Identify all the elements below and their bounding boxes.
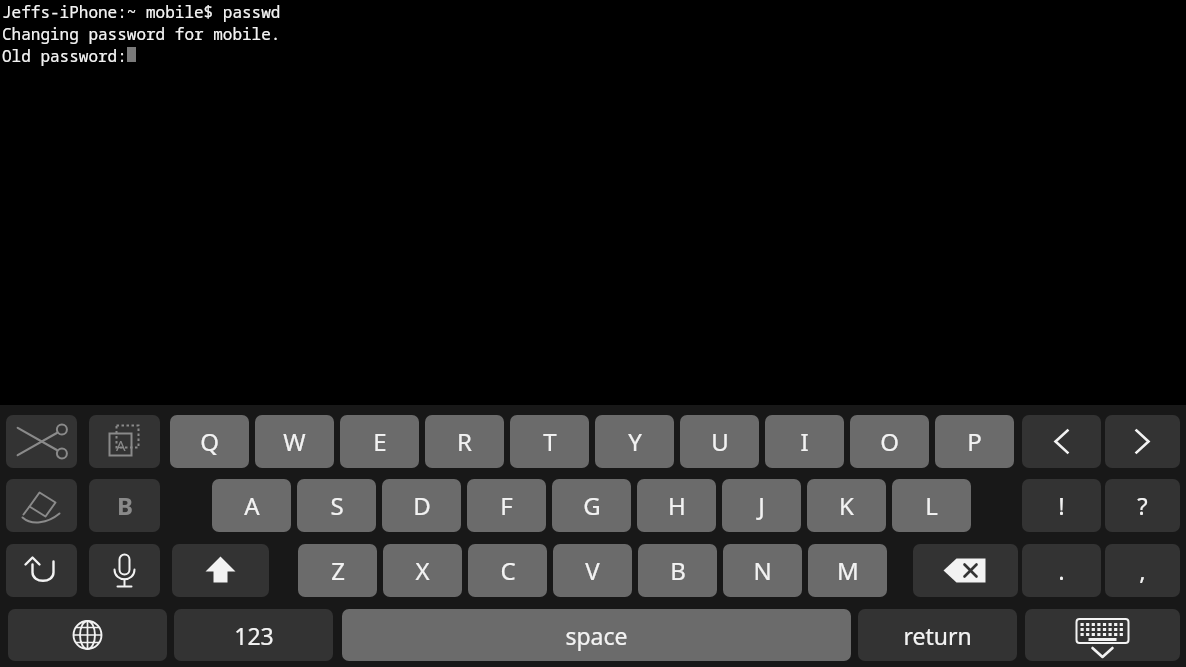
staticText: return (903, 620, 972, 651)
staticText: P (967, 425, 982, 458)
button[interactable]: Dictate (89, 544, 160, 597)
button[interactable]: Undo (6, 544, 77, 597)
staticText: Z (331, 554, 345, 587)
staticText: ? (1137, 489, 1148, 522)
staticText: A (116, 435, 126, 455)
button[interactable]: Backspace (913, 544, 1018, 597)
button[interactable]: Next (1105, 415, 1180, 468)
button[interactable]: W (255, 415, 334, 468)
staticText: M (837, 554, 859, 587)
staticText: O (880, 425, 899, 458)
staticText: T (543, 425, 557, 458)
button[interactable]: E (340, 415, 419, 468)
staticText: Jeffs-iPhone:~ mobile$ passwd (2, 1, 281, 23)
button[interactable]: Hide keyboard (1025, 609, 1180, 661)
staticText: K (839, 489, 854, 522)
staticText: L (925, 489, 938, 522)
staticText: R (457, 425, 472, 458)
staticText: V (585, 554, 600, 587)
button[interactable]: P (935, 415, 1014, 468)
button[interactable]: Q (170, 415, 249, 468)
staticText: W (283, 425, 306, 458)
button[interactable]: Change keyboard (8, 609, 167, 661)
button[interactable]: Cut (6, 415, 77, 468)
staticText: U (711, 425, 729, 458)
button[interactable]: K (807, 479, 886, 532)
button[interactable]: F (467, 479, 546, 532)
staticText: C (500, 554, 516, 587)
staticText: Changing password for mobile. (2, 23, 281, 45)
staticText: Q (200, 425, 219, 458)
staticText: E (373, 425, 387, 458)
staticText: X (415, 554, 430, 587)
button[interactable]: I (765, 415, 844, 468)
button[interactable]: X (383, 544, 462, 597)
button[interactable]: 123 (174, 609, 333, 661)
button[interactable]: Shift (172, 544, 269, 597)
staticText: F (500, 489, 513, 522)
button[interactable]: N (723, 544, 802, 597)
button[interactable]: return (858, 609, 1017, 661)
button[interactable]: G (552, 479, 631, 532)
button[interactable]: S (297, 479, 376, 532)
button[interactable]: O (850, 415, 929, 468)
staticText: A (244, 489, 260, 522)
staticText: J (758, 489, 765, 522)
staticText: Old password: (2, 45, 127, 67)
button[interactable]: L (892, 479, 971, 532)
button[interactable]: J (722, 479, 801, 532)
button[interactable]: T (510, 415, 589, 468)
button[interactable]: ! (1022, 479, 1101, 532)
staticText: 123 (234, 620, 274, 651)
staticText: S (330, 489, 344, 522)
button[interactable]: B (638, 544, 717, 597)
button[interactable]: M (808, 544, 887, 597)
button[interactable]: A (212, 479, 291, 532)
button[interactable]: U (680, 415, 759, 468)
button[interactable]: R (425, 415, 504, 468)
button[interactable]: C (468, 544, 547, 597)
staticText: ! (1058, 489, 1065, 522)
staticText: , (1139, 554, 1146, 587)
button[interactable]: Previous (1022, 415, 1101, 468)
staticText: H (668, 489, 686, 522)
button[interactable]: D (382, 479, 461, 532)
staticText: D (413, 489, 431, 522)
button[interactable]: Z (298, 544, 377, 597)
button[interactable]: Paste (6, 479, 77, 532)
button[interactable]: Y (595, 415, 674, 468)
staticText: B (670, 554, 686, 587)
button[interactable]: . (1022, 544, 1101, 597)
staticText: G (583, 489, 601, 522)
staticText: N (753, 554, 772, 587)
staticText: space (565, 620, 628, 651)
button[interactable]: V (553, 544, 632, 597)
button[interactable]: B (89, 479, 160, 532)
button[interactable]: Select All (89, 415, 160, 468)
button[interactable]: , (1105, 544, 1180, 597)
button[interactable]: space (342, 609, 851, 661)
button[interactable]: H (637, 479, 716, 532)
staticText: I (800, 425, 809, 458)
button[interactable]: ? (1105, 479, 1180, 532)
staticText: B (117, 489, 133, 522)
staticText: . (1058, 554, 1065, 587)
staticText: Y (628, 425, 642, 458)
